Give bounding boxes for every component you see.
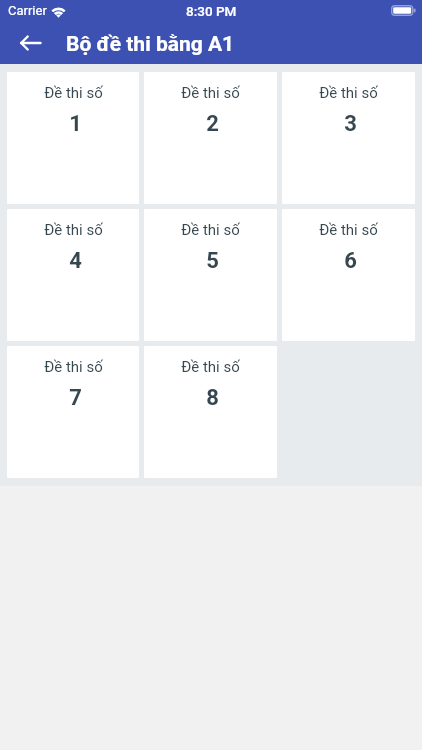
staticText: Đề thi số xyxy=(319,84,378,102)
staticText: 2 xyxy=(206,111,219,137)
staticText: 6 xyxy=(344,248,357,274)
button[interactable]: Đề thi số xyxy=(282,72,415,204)
button[interactable]: Đề thi số xyxy=(144,72,277,204)
staticText: 8:30 PM xyxy=(186,3,237,19)
staticText: Carrier xyxy=(8,3,47,18)
staticText: 1 xyxy=(69,111,82,137)
staticText: Đề thi số xyxy=(181,84,240,102)
staticText: Đề thi số xyxy=(181,221,240,239)
staticText: 8 xyxy=(206,385,219,411)
button[interactable]: Đề thi số xyxy=(144,346,277,478)
staticText: Đề thi số xyxy=(44,358,103,376)
staticText: 3 xyxy=(344,111,357,137)
staticText: 5 xyxy=(206,248,219,274)
button[interactable]: Đề thi số xyxy=(7,72,139,204)
staticText: Đề thi số xyxy=(44,221,103,239)
staticText: Đề thi số xyxy=(44,84,103,102)
staticText: Đề thi số xyxy=(319,221,378,239)
staticText: 4 xyxy=(69,248,82,274)
staticText: Bộ đề thi bằng A1 xyxy=(66,32,235,57)
staticText: Đề thi số xyxy=(181,358,240,376)
staticText: 7 xyxy=(69,385,82,411)
button[interactable]: Đề thi số xyxy=(282,209,415,341)
button[interactable]: Đề thi số xyxy=(7,346,139,478)
button[interactable]: Back xyxy=(0,24,60,64)
button[interactable]: Đề thi số xyxy=(144,209,277,341)
button[interactable]: Đề thi số xyxy=(7,209,139,341)
